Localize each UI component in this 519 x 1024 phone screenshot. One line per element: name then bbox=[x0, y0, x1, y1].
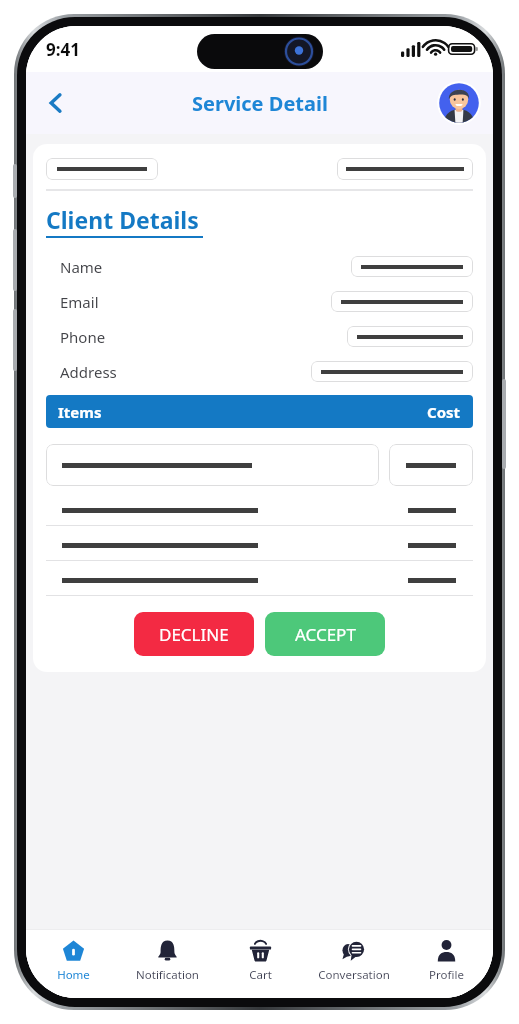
staticText: Home bbox=[57, 967, 90, 983]
staticText: Profile bbox=[429, 967, 464, 983]
button[interactable]: Back bbox=[34, 81, 78, 125]
button[interactable]: ACCEPT bbox=[265, 612, 385, 656]
staticText: ACCEPT bbox=[295, 623, 356, 646]
button[interactable]: Profile bbox=[400, 930, 493, 998]
staticText: 9:41 bbox=[46, 38, 80, 61]
staticText: Email bbox=[60, 292, 99, 312]
button[interactable] bbox=[46, 578, 473, 583]
staticText: DECLINE bbox=[159, 623, 229, 646]
button[interactable] bbox=[389, 444, 473, 486]
staticText: Cost bbox=[427, 402, 461, 422]
button[interactable]: Notification bbox=[120, 930, 214, 998]
staticText: Name bbox=[60, 257, 103, 277]
staticText: Client Details bbox=[46, 204, 199, 235]
staticText: Notification bbox=[136, 967, 199, 983]
button[interactable] bbox=[46, 543, 473, 548]
button[interactable]: Cart bbox=[214, 930, 307, 998]
button[interactable]: Items bbox=[46, 395, 473, 428]
staticText: Cart bbox=[249, 967, 272, 983]
button[interactable] bbox=[46, 444, 379, 486]
button[interactable] bbox=[46, 508, 473, 513]
staticText: Phone bbox=[60, 327, 106, 347]
button[interactable]: Home bbox=[26, 930, 120, 998]
staticText: Items bbox=[58, 402, 102, 422]
button[interactable]: DECLINE bbox=[134, 612, 254, 656]
staticText: Address bbox=[60, 362, 117, 382]
button[interactable]: Profile avatar bbox=[437, 81, 481, 125]
button[interactable]: Conversation bbox=[307, 930, 400, 998]
staticText: Conversation bbox=[318, 967, 390, 983]
staticText: Service Detail bbox=[192, 90, 328, 117]
